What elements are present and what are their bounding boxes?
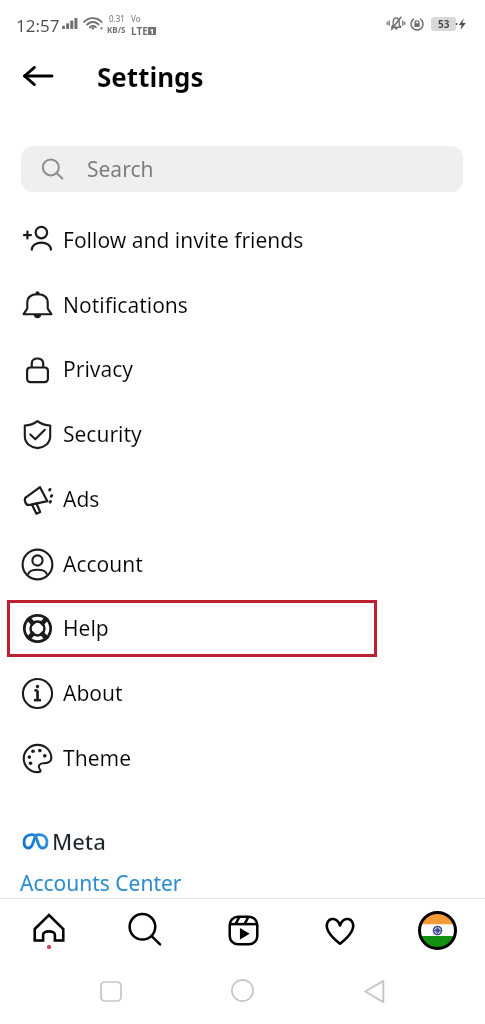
button[interactable]: Home xyxy=(218,966,267,1015)
staticText: About xyxy=(63,679,123,708)
button[interactable]: Security xyxy=(0,402,485,466)
staticText: 53 xyxy=(438,17,450,31)
staticText: Follow and invite friends xyxy=(63,226,304,255)
button[interactable]: Ads xyxy=(0,467,485,531)
button[interactable]: Help xyxy=(0,596,485,660)
button[interactable]: Accounts Center xyxy=(16,864,186,903)
button[interactable]: Reels xyxy=(211,899,275,961)
button[interactable]: Theme xyxy=(0,726,485,790)
staticText: LTE xyxy=(131,24,148,38)
staticText: Settings xyxy=(97,59,204,94)
staticText: Vo xyxy=(131,13,141,24)
staticText: Ads xyxy=(63,485,100,514)
button[interactable]: Home xyxy=(17,899,81,961)
button[interactable]: Activity xyxy=(308,899,372,961)
staticText: Notifications xyxy=(63,291,188,320)
button[interactable]: Follow and invite friends xyxy=(0,208,485,272)
button[interactable]: Notifications xyxy=(0,273,485,337)
staticText: 12:57 xyxy=(16,14,60,37)
staticText: Accounts Center xyxy=(20,869,182,898)
button[interactable]: Search xyxy=(113,899,177,961)
staticText: KB/S xyxy=(107,24,126,35)
button[interactable]: Back xyxy=(15,53,61,99)
staticText: Security xyxy=(63,420,142,449)
button[interactable]: Account xyxy=(0,532,485,596)
staticText: 0.31 xyxy=(109,13,125,24)
button[interactable]: Recents xyxy=(86,967,135,1016)
button[interactable]: About xyxy=(0,661,485,725)
staticText: Help xyxy=(63,614,109,643)
staticText: 1 xyxy=(150,27,155,35)
staticText: Account xyxy=(63,550,143,579)
staticText: Meta xyxy=(52,826,106,856)
button[interactable]: Search xyxy=(21,146,463,192)
staticText: Search xyxy=(87,155,154,184)
button[interactable]: Back xyxy=(350,967,399,1016)
button[interactable]: Profile xyxy=(405,899,469,961)
staticText: Theme xyxy=(63,744,131,773)
button[interactable]: Privacy xyxy=(0,337,485,401)
staticText: Privacy xyxy=(63,355,134,384)
